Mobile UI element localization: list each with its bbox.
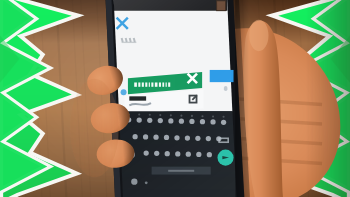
button[interactable]: Phone with keyboard suggestion tooltip xyxy=(0,0,350,197)
